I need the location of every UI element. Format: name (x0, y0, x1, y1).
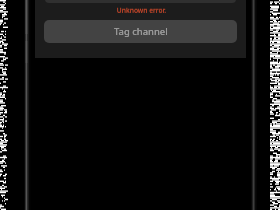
button[interactable]: Tag channel (44, 20, 237, 43)
other: Volume (25, 0, 28, 34)
other: Power (25, 41, 28, 63)
staticText: Unknown error. (36, 6, 247, 15)
staticText: Tag channel (114, 25, 168, 38)
staticText: Unknown error. (36, 5, 247, 14)
staticText: Unknown error. (36, 6, 247, 15)
staticText: Tag channel (114, 25, 168, 38)
staticText: Tag channel (114, 25, 168, 38)
